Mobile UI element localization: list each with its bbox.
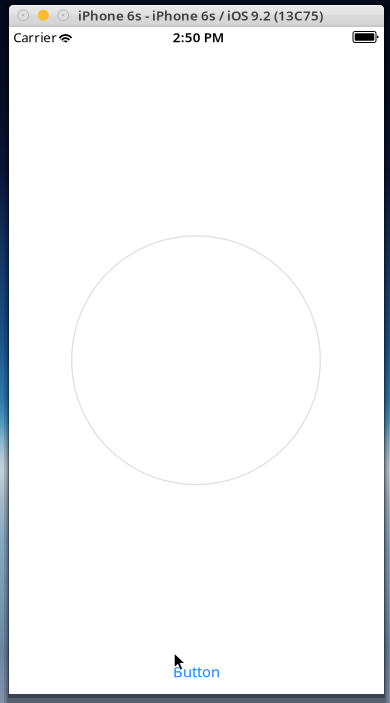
button[interactable]: Zoom <box>57 9 70 22</box>
staticText: Carrier <box>13 28 57 46</box>
staticText: 2:50 PM <box>173 28 224 46</box>
button[interactable]: Minimize <box>37 9 50 22</box>
button[interactable]: Close <box>17 9 30 22</box>
staticText: Button <box>173 662 220 681</box>
staticText: iPhone 6s - iPhone 6s / iOS 9.2 (13C75) <box>78 6 323 24</box>
button[interactable]: Button <box>151 660 241 682</box>
